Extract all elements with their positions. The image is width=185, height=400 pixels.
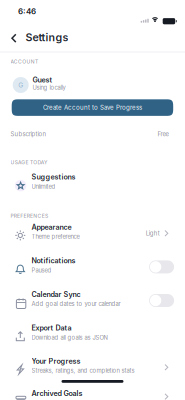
button[interactable]: Export Data <box>0 323 185 345</box>
staticText: Settings <box>25 31 68 44</box>
button[interactable]: Create Account to Save Progress <box>12 99 173 116</box>
button[interactable]: Calendar Sync <box>0 289 185 311</box>
staticText: Your Progress <box>31 357 80 365</box>
staticText: Archived Goals <box>31 389 82 398</box>
staticText: Streaks, ratings, and completion stats <box>31 367 134 374</box>
staticText: Download all goals as JSON <box>31 334 107 341</box>
staticText: Add goal dates to your calendar <box>31 300 120 307</box>
button[interactable]: Archived Goals <box>0 389 185 400</box>
staticText: Subscription <box>10 130 46 138</box>
staticText: Light <box>146 230 160 237</box>
staticText: ACCOUNT <box>10 58 38 65</box>
staticText: Create Account to Save Progress <box>43 104 142 111</box>
staticText: 6:46 <box>18 6 36 16</box>
staticText: Export Data <box>31 324 71 332</box>
staticText: Using locally <box>32 84 65 91</box>
staticText: Guest <box>32 76 52 84</box>
staticText: USAGE TODAY <box>10 159 47 165</box>
staticText: Paused <box>31 267 51 274</box>
button[interactable]: Appearance <box>0 222 185 244</box>
staticText: PREFERENCES <box>10 213 48 219</box>
staticText: Theme preference <box>31 233 79 240</box>
button[interactable]: Back <box>7 29 21 47</box>
staticText: Unlimited <box>31 183 55 190</box>
staticText: Suggestions <box>31 173 75 181</box>
staticText: G <box>18 81 23 89</box>
staticText: Calendar Sync <box>31 290 80 299</box>
staticText: Free <box>158 130 169 138</box>
button[interactable]: Subscription <box>0 128 185 140</box>
button[interactable]: Suggestions <box>0 172 185 194</box>
button[interactable]: Notifications <box>0 256 185 278</box>
staticText: Notifications <box>31 256 75 265</box>
button[interactable]: G <box>0 75 185 95</box>
button[interactable]: Your Progress <box>0 356 185 378</box>
staticText: Appearance <box>31 223 71 231</box>
